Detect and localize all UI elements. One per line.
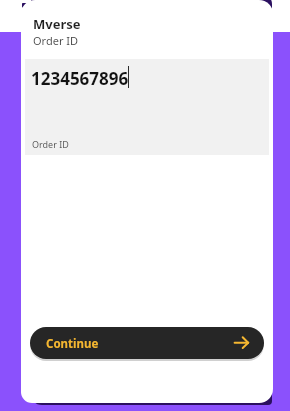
button[interactable]: 1234567896	[25, 59, 269, 155]
staticText: Mverse	[33, 15, 81, 33]
staticText: 1234567896	[31, 67, 129, 90]
other: Continue	[234, 336, 249, 349]
staticText: Order ID	[32, 138, 69, 150]
button[interactable]: Continue	[30, 327, 264, 359]
staticText: Order ID	[33, 33, 79, 48]
staticText: Continue	[46, 336, 99, 352]
